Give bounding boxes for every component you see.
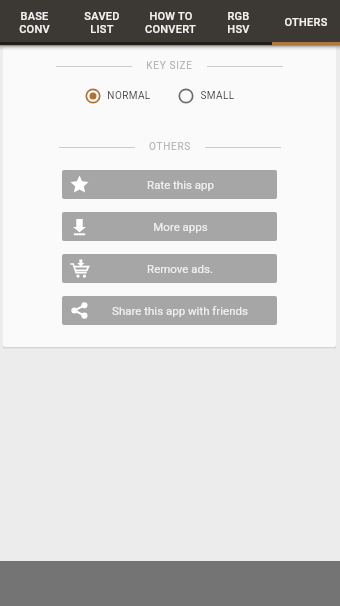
staticText: Remove ads.: [147, 262, 213, 275]
staticText: Share this app with friends: [112, 304, 248, 317]
staticText: CONV: [19, 23, 50, 36]
staticText: BASE: [20, 10, 49, 23]
staticText: SMALL: [200, 90, 235, 102]
staticText: HOW TO: [149, 10, 193, 23]
staticText: KEY SIZE: [146, 60, 193, 72]
staticText: HSV: [227, 23, 250, 36]
staticText: OTHERS: [149, 141, 191, 153]
staticText: OTHERS: [284, 16, 328, 29]
button[interactable]: OTHERS: [272, 0, 340, 45]
button[interactable]: SAVED: [68, 0, 136, 45]
button[interactable]: More apps: [62, 212, 277, 241]
staticText: NORMAL: [107, 90, 151, 102]
staticText: Rate this app: [147, 178, 214, 191]
button[interactable]: SMALL: [178, 88, 235, 104]
button[interactable]: Share this app with friends: [62, 296, 277, 325]
button[interactable]: HOW TO: [136, 0, 204, 45]
staticText: CONVERT: [145, 23, 196, 36]
staticText: SAVED: [84, 10, 120, 23]
button[interactable]: Remove ads.: [62, 254, 277, 283]
staticText: LIST: [90, 23, 114, 36]
button[interactable]: Rate this app: [62, 170, 277, 199]
button[interactable]: BASE: [0, 0, 68, 45]
button[interactable]: NORMAL: [85, 88, 151, 104]
button[interactable]: RGB: [204, 0, 272, 45]
staticText: RGB: [227, 10, 250, 23]
staticText: More apps: [153, 220, 208, 233]
